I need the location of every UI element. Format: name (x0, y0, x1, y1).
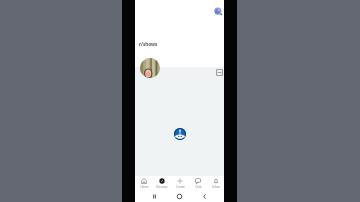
button[interactable]: Create (171, 176, 189, 190)
staticText: Create (176, 185, 185, 189)
button[interactable]: Discover (153, 176, 171, 190)
button[interactable]: Change layout (216, 69, 223, 76)
button[interactable]: Chat (189, 176, 207, 190)
staticText: Inbox (212, 185, 220, 189)
staticText: Discover (156, 185, 168, 189)
staticText: r/shows (139, 41, 158, 47)
button[interactable]: Inbox (207, 176, 224, 190)
button[interactable]: Community avatar (140, 58, 160, 78)
button[interactable]: Home (135, 176, 153, 190)
button[interactable]: Back (201, 193, 208, 200)
staticText: Home (140, 185, 149, 189)
button[interactable]: Profile (214, 7, 223, 16)
button[interactable]: Home (176, 193, 183, 200)
button[interactable]: r/shows (135, 37, 224, 48)
button[interactable]: Recents (151, 193, 158, 200)
staticText: Chat (195, 185, 202, 189)
